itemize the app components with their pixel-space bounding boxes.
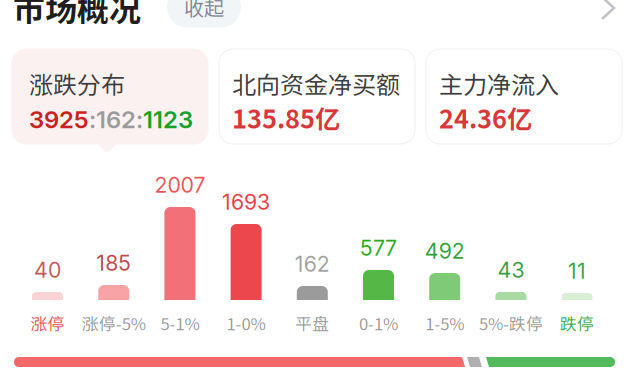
staticText: 492 xyxy=(425,238,465,264)
staticText: 40 xyxy=(34,257,61,283)
staticText: 135.85亿 xyxy=(232,99,340,136)
staticText: : xyxy=(136,105,143,134)
staticText: 24.36亿 xyxy=(439,99,532,136)
staticText: 北向资金净买额 xyxy=(232,66,400,101)
staticText: 1693 xyxy=(222,189,270,215)
button[interactable]: 北向资金净买额 xyxy=(219,49,415,144)
staticText: 涨停-5% xyxy=(82,311,146,335)
staticText: 1-0% xyxy=(227,311,266,335)
button[interactable]: 主力净流入 xyxy=(426,49,622,144)
staticText: 43 xyxy=(497,257,524,283)
staticText: 跌停 xyxy=(560,311,594,335)
staticText: 162 xyxy=(295,251,330,277)
staticText: 0-1% xyxy=(359,311,398,335)
staticText: 平盘 xyxy=(295,311,329,335)
button[interactable]: 涨跌分布 xyxy=(12,49,208,144)
staticText: 主力净流入 xyxy=(439,66,559,101)
staticText: 185 xyxy=(96,250,131,276)
staticText: 162 xyxy=(96,105,136,134)
staticText: 5%-跌停 xyxy=(479,311,543,335)
button[interactable]: 查看更多 xyxy=(600,0,626,24)
staticText: 11 xyxy=(568,258,586,284)
staticText: 1123 xyxy=(143,105,193,134)
staticText: 2007 xyxy=(154,172,205,198)
staticText: 涨跌分布 xyxy=(29,66,125,101)
staticText: 收起 xyxy=(184,0,224,21)
staticText: 577 xyxy=(360,235,397,261)
staticText: 涨停 xyxy=(30,311,64,335)
staticText: 1-5% xyxy=(425,311,464,335)
button[interactable]: 收起 xyxy=(167,0,241,27)
staticText: 5-1% xyxy=(160,311,199,335)
staticText: : xyxy=(89,105,96,134)
staticText: 3925 xyxy=(29,105,89,134)
staticText: 市场概况 xyxy=(13,0,141,30)
